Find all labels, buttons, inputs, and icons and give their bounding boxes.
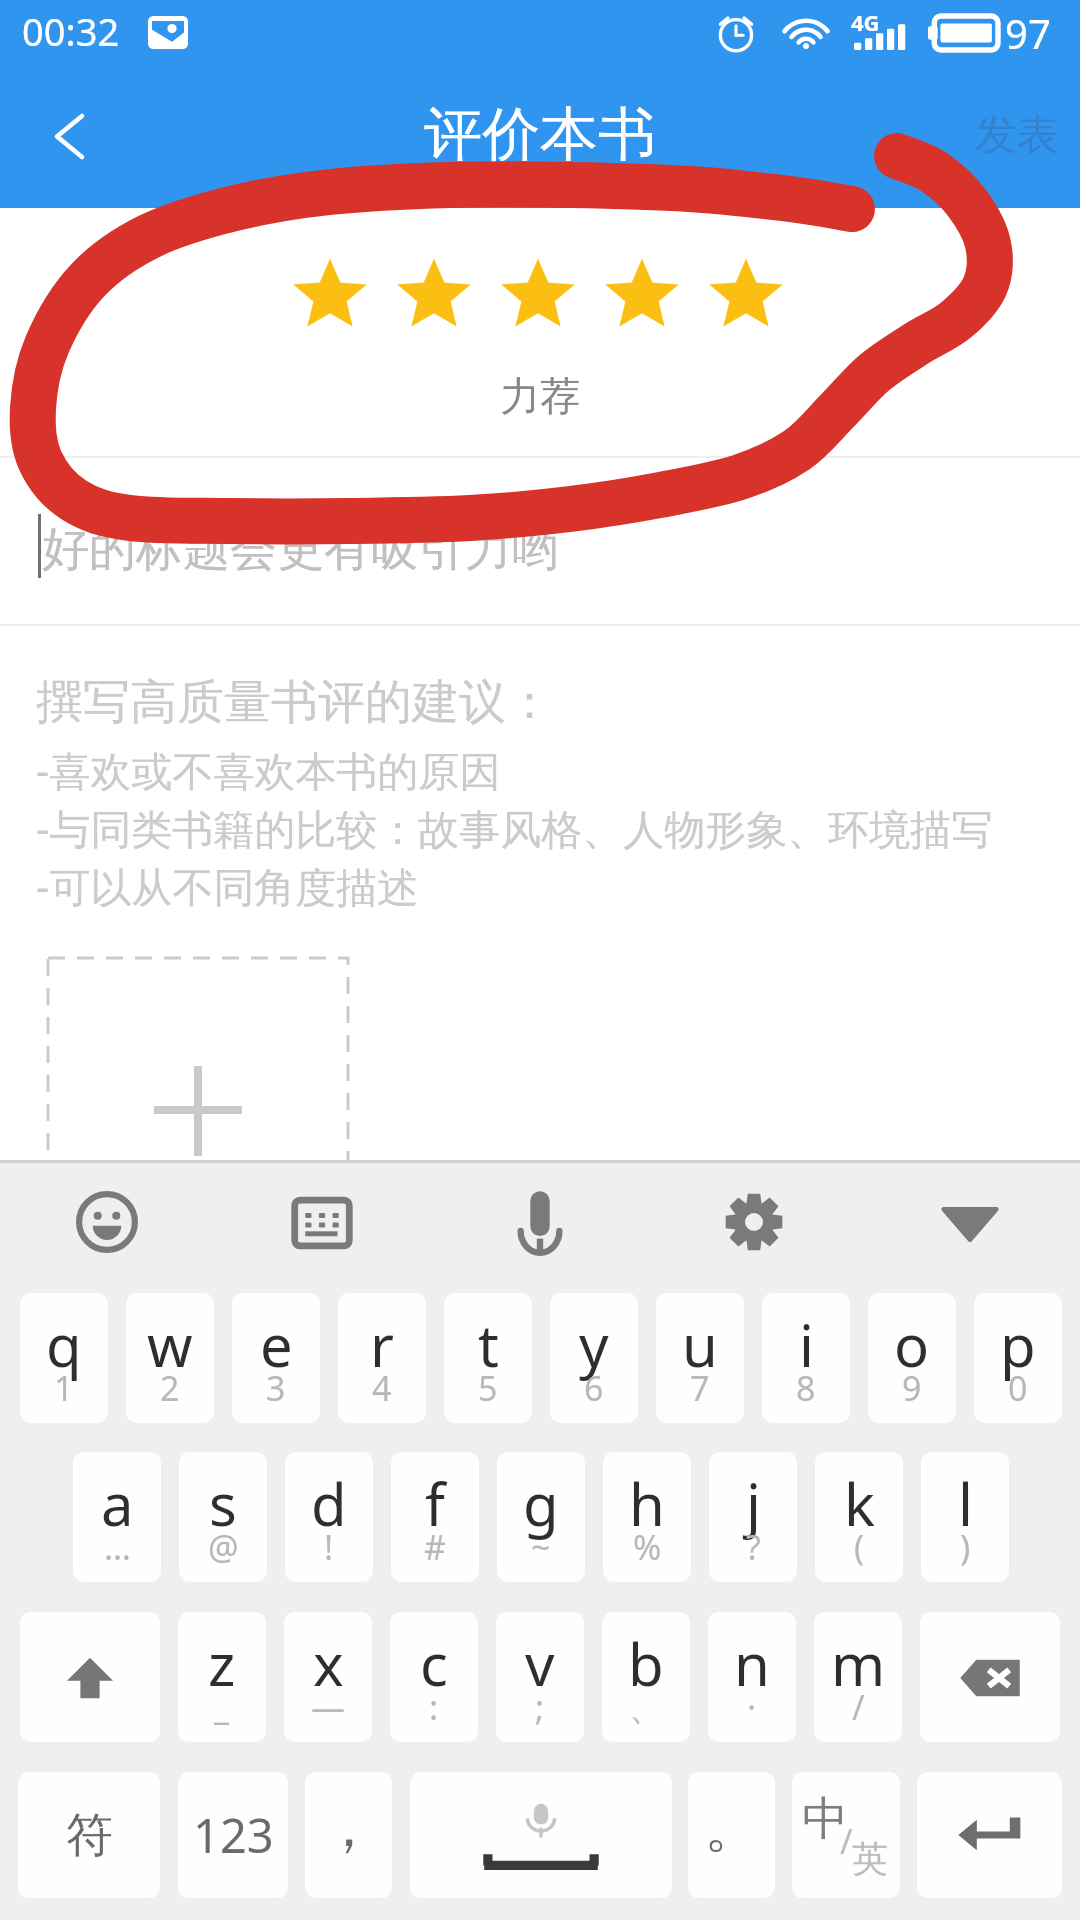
button[interactable]: g — [497, 1452, 585, 1582]
button[interactable]: z — [178, 1612, 266, 1742]
staticText: · — [747, 1684, 757, 1730]
staticText: 7 — [690, 1365, 710, 1411]
button[interactable]: l — [921, 1452, 1009, 1582]
button[interactable]: Switch Chinese English — [792, 1772, 900, 1898]
button[interactable]: Backspace — [920, 1612, 1060, 1742]
staticText: : — [429, 1684, 439, 1730]
staticText: i — [799, 1305, 814, 1384]
staticText: 、 — [629, 1687, 663, 1730]
staticText: 9 — [902, 1365, 922, 1411]
button[interactable]: w — [126, 1293, 214, 1423]
staticText: f — [425, 1464, 445, 1543]
button[interactable]: Back — [0, 64, 128, 208]
staticText: ( — [854, 1524, 865, 1570]
staticText: o — [894, 1305, 930, 1384]
staticText: % — [633, 1524, 662, 1570]
staticText: ; — [535, 1684, 545, 1730]
button[interactable]: o — [868, 1293, 956, 1423]
staticText: 撰写高质量书评的建议： — [36, 673, 553, 732]
button[interactable]: 符 — [18, 1772, 160, 1898]
staticText: 97 — [1005, 6, 1051, 60]
button[interactable]: u — [656, 1293, 744, 1423]
button[interactable]: Add image — [48, 958, 348, 1218]
button[interactable]: k — [815, 1452, 903, 1582]
staticText: q — [46, 1305, 82, 1384]
staticText: 。 — [704, 1792, 760, 1863]
staticText: k — [844, 1464, 875, 1543]
button[interactable]: 123 — [178, 1772, 288, 1898]
button[interactable]: y — [550, 1293, 638, 1423]
staticText: 符 — [66, 1806, 113, 1865]
staticText: ) — [960, 1524, 971, 1570]
button[interactable]: i — [762, 1293, 850, 1423]
staticText: 5 — [478, 1365, 498, 1411]
button[interactable]: r — [338, 1293, 426, 1423]
button[interactable]: Enter — [917, 1772, 1062, 1898]
button[interactable]: 。 — [688, 1772, 775, 1898]
staticText: @ — [208, 1524, 239, 1570]
button[interactable]: 好的标题会更有吸引力哟 — [0, 458, 1080, 624]
button[interactable]: p — [974, 1293, 1062, 1423]
button[interactable]: c — [390, 1612, 478, 1742]
button[interactable]: x — [284, 1612, 372, 1742]
staticText: 123 — [193, 1803, 274, 1867]
button[interactable]: Rate 2 stars — [382, 248, 486, 340]
button[interactable]: Rate 1 stars — [278, 248, 382, 340]
staticText: / — [840, 1818, 853, 1864]
button[interactable]: Rate 4 stars — [590, 248, 694, 340]
staticText: j — [746, 1464, 761, 1543]
button[interactable]: t — [444, 1293, 532, 1423]
staticText: w — [147, 1305, 193, 1384]
button[interactable]: f — [391, 1452, 479, 1582]
button[interactable]: e — [232, 1293, 320, 1423]
staticText: 4G — [851, 7, 880, 37]
button[interactable]: h — [603, 1452, 691, 1582]
staticText: 2 — [160, 1365, 180, 1411]
staticText: z — [208, 1624, 236, 1703]
button[interactable]: Voice input — [486, 1168, 594, 1276]
staticText: v — [525, 1624, 555, 1703]
staticText: y — [579, 1305, 609, 1384]
button[interactable]: Shift — [20, 1612, 160, 1742]
button[interactable]: 发表 — [920, 64, 1080, 208]
button[interactable]: ， — [305, 1772, 392, 1898]
staticText: 4 — [372, 1365, 392, 1411]
staticText: -可以从不同角度描述 — [36, 858, 419, 914]
button[interactable]: Rate 3 stars — [486, 248, 590, 340]
button[interactable]: j — [709, 1452, 797, 1582]
button[interactable]: Hide keyboard — [916, 1170, 1024, 1278]
staticText: h — [629, 1464, 665, 1543]
staticText: -与同类书籍的比较：故事风格、人物形象、环境描写 — [36, 800, 993, 856]
staticText: 3 — [266, 1365, 286, 1411]
button[interactable]: Space — [410, 1772, 672, 1898]
button[interactable]: Keyboard settings — [700, 1168, 808, 1276]
staticText: c — [420, 1624, 448, 1703]
staticText: 1 — [54, 1365, 74, 1411]
staticText: b — [628, 1624, 664, 1703]
staticText: 力荐 — [0, 371, 1080, 421]
staticText: 0 — [1008, 1365, 1028, 1411]
button[interactable]: Rate 5 stars — [694, 248, 798, 340]
staticText: ， — [321, 1792, 377, 1863]
button[interactable]: a — [73, 1452, 161, 1582]
button[interactable]: m — [814, 1612, 902, 1742]
staticText: d — [311, 1464, 347, 1543]
button[interactable]: v — [496, 1612, 584, 1742]
staticText: 好的标题会更有吸引力哟 — [42, 520, 559, 579]
button[interactable]: b — [602, 1612, 690, 1742]
staticText: l — [958, 1464, 973, 1543]
staticText: g — [523, 1464, 559, 1543]
button[interactable]: q — [20, 1293, 108, 1423]
staticText: a — [101, 1464, 134, 1543]
staticText: s — [209, 1464, 237, 1543]
staticText: u — [682, 1305, 718, 1384]
staticText: 评价本书 — [424, 98, 656, 171]
staticText: # — [424, 1524, 446, 1570]
button[interactable]: Keyboard layout — [268, 1169, 376, 1277]
button[interactable]: s — [179, 1452, 267, 1582]
staticText: 英 — [852, 1836, 888, 1881]
button[interactable]: Emoji — [53, 1168, 161, 1276]
staticText: / — [852, 1684, 865, 1730]
button[interactable]: d — [285, 1452, 373, 1582]
button[interactable]: n — [708, 1612, 796, 1742]
